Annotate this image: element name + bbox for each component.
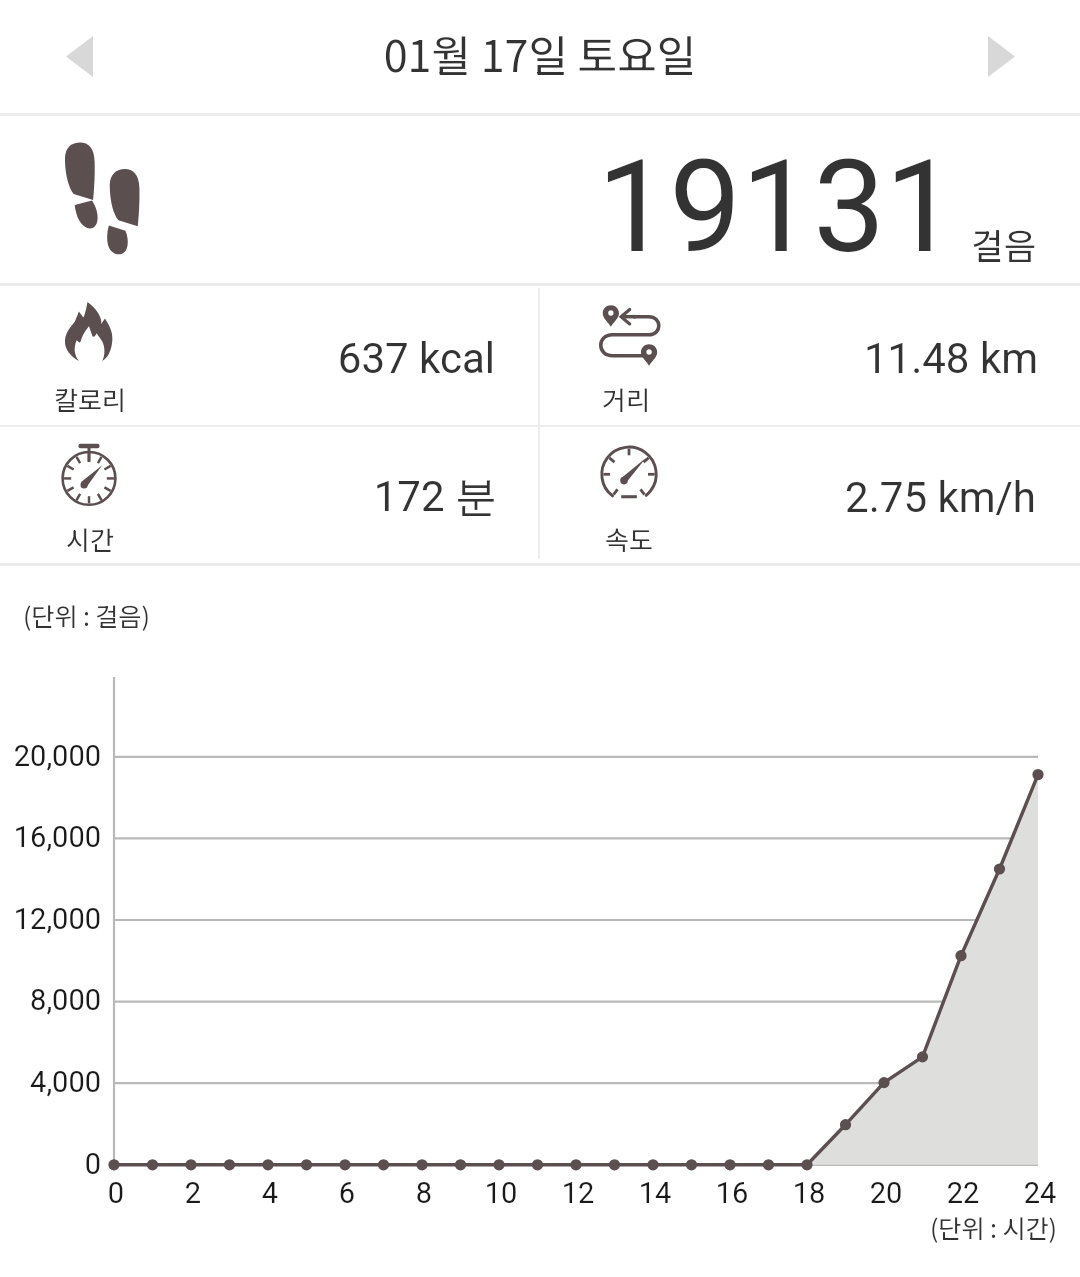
staticText: 172 분 (97, 471, 497, 524)
staticText: 12,000 (0, 902, 101, 936)
staticText: 24 (980, 1176, 1080, 1210)
button[interactable] (0, 428, 538, 563)
staticText: (단위 : 시간) (797, 1209, 1057, 1245)
button[interactable]: Next day (960, 15, 1042, 97)
staticText: 4 (210, 1176, 330, 1210)
staticText: 16 (672, 1176, 792, 1210)
staticText: 22 (903, 1176, 1023, 1210)
staticText: 637 kcal (95, 334, 495, 383)
staticText: 8 (364, 1176, 484, 1210)
button[interactable] (0, 116, 1080, 283)
button[interactable]: Previous day (38, 15, 120, 97)
staticText: 칼로리 (54, 380, 126, 418)
staticText: 걸음 (836, 218, 1036, 269)
staticText: 20 (826, 1176, 946, 1210)
staticText: 거리 (602, 380, 650, 418)
staticText: 0 (56, 1176, 176, 1210)
staticText: 19131 (457, 132, 957, 282)
staticText: 11.48 km (638, 334, 1038, 383)
staticText: 2.75 km/h (636, 473, 1036, 522)
staticText: 2 (133, 1176, 253, 1210)
staticText: 12 (518, 1176, 638, 1210)
staticText: 0 (0, 1147, 101, 1181)
staticText: 시간 (66, 520, 114, 558)
staticText: 속도 (605, 520, 653, 558)
staticText: 8,000 (0, 983, 101, 1017)
staticText: (단위 : 걸음) (23, 597, 151, 633)
button[interactable] (540, 286, 1080, 425)
staticText: 4,000 (0, 1065, 101, 1099)
button[interactable] (0, 286, 538, 425)
staticText: 18 (749, 1176, 869, 1210)
staticText: 10 (441, 1176, 561, 1210)
staticText: 6 (287, 1176, 407, 1210)
staticText: 20,000 (0, 739, 101, 773)
staticText: 16,000 (0, 820, 101, 854)
staticText: 14 (595, 1176, 715, 1210)
button[interactable] (540, 428, 1080, 563)
staticText: 01월 17일 토요일 (240, 22, 840, 84)
